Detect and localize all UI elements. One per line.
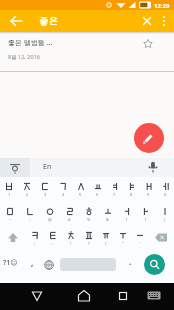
staticText: 9 [147, 192, 150, 197]
button[interactable] [156, 10, 174, 32]
button[interactable]: # [60, 204, 79, 228]
button[interactable]: 5 [72, 179, 89, 204]
button[interactable]: 7 [106, 179, 123, 204]
button[interactable]: 0 [157, 179, 174, 204]
button[interactable]: 4 [54, 179, 72, 204]
staticText: ? [88, 241, 90, 246]
button[interactable]: En [30, 158, 174, 177]
button[interactable]: ' [131, 228, 148, 252]
staticText: En [43, 162, 52, 172]
button[interactable] [43, 259, 55, 271]
staticText: # [68, 217, 71, 222]
button[interactable]: / [97, 228, 114, 252]
staticText: 8월 12, 2016 [8, 53, 40, 61]
button[interactable] [71, 283, 97, 310]
staticText: " [122, 241, 124, 246]
button[interactable]: ; [26, 228, 44, 252]
button[interactable]: : [44, 228, 62, 252]
button[interactable] [138, 10, 156, 32]
button[interactable]: ! [62, 228, 80, 252]
button[interactable]: ?1☺ [3, 258, 18, 268]
button[interactable] [140, 36, 156, 52]
button[interactable]: . [129, 256, 132, 267]
staticText: | [163, 217, 166, 222]
staticText: 좋은 앨범들 ... [8, 38, 53, 48]
button[interactable]: 3 [36, 179, 54, 204]
staticText: : [52, 241, 54, 246]
button[interactable]: % [79, 204, 98, 228]
button[interactable]: " [114, 228, 131, 252]
staticText: 좋은 [39, 15, 59, 26]
staticText: 1 [8, 192, 11, 197]
staticText: 12:20 [154, 2, 170, 10]
button[interactable]: 8 [123, 179, 140, 204]
button[interactable] [144, 254, 165, 275]
button[interactable]: | [155, 204, 174, 228]
staticText: & [106, 217, 109, 222]
button[interactable]: ? [80, 228, 97, 252]
button[interactable] [110, 283, 136, 310]
button[interactable]: ~ [0, 204, 20, 228]
staticText: ' [139, 241, 140, 246]
staticText: 4 [62, 192, 65, 197]
button[interactable]: 6 [89, 179, 106, 204]
staticText: 5 [79, 192, 82, 197]
button[interactable] [0, 158, 30, 177]
staticText: ~ [9, 217, 12, 222]
staticText: 2 [26, 192, 29, 197]
staticText: ! [70, 241, 72, 246]
staticText: 0 [164, 192, 167, 197]
staticText: ; [34, 241, 36, 246]
staticText: ( [126, 217, 128, 222]
staticText: - [29, 217, 31, 222]
button[interactable]: ( [117, 204, 136, 228]
button[interactable]: 2 [18, 179, 36, 204]
button[interactable]: 1 [0, 179, 18, 204]
staticText: / [105, 241, 107, 246]
staticText: 8 [130, 192, 133, 197]
button[interactable]: 9 [140, 179, 157, 204]
button[interactable]: , [31, 257, 34, 268]
staticText: @ [48, 217, 52, 222]
button[interactable] [0, 10, 28, 32]
staticText: 7 [113, 192, 116, 197]
button[interactable] [24, 283, 50, 310]
button[interactable]: @ [40, 204, 60, 228]
button[interactable] [134, 123, 164, 153]
button[interactable] [143, 283, 165, 310]
staticText: 3 [44, 192, 47, 197]
staticText: % [87, 217, 91, 222]
staticText: 6 [96, 192, 99, 197]
button[interactable]: ) [136, 204, 155, 228]
staticText: ) [145, 217, 147, 222]
button[interactable] [0, 228, 26, 252]
button[interactable]: & [98, 204, 117, 228]
button[interactable] [148, 228, 174, 252]
button[interactable]: - [20, 204, 40, 228]
